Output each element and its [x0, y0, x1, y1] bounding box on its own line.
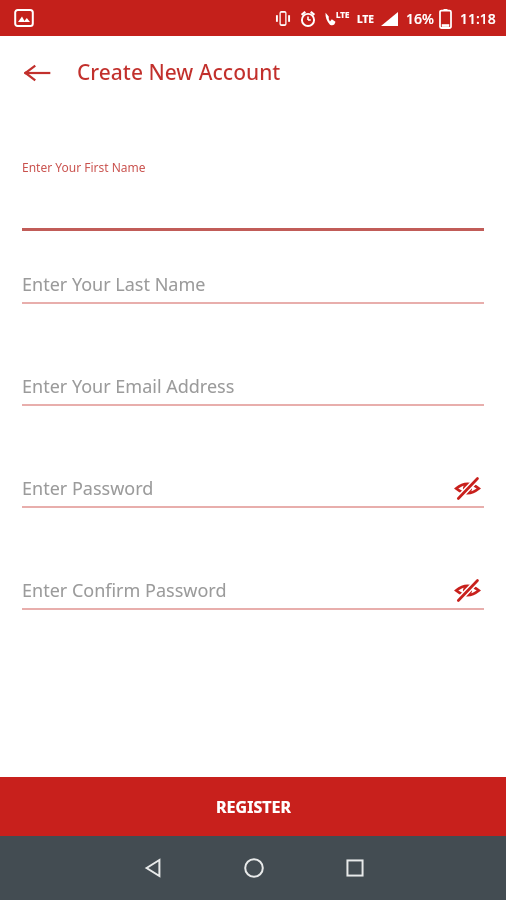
button[interactable]: Home	[203, 836, 304, 900]
button[interactable]: Enter Your Email Address	[22, 374, 484, 406]
staticText: Enter Your First Name	[22, 159, 146, 175]
button[interactable]: REGISTER	[0, 777, 506, 836]
staticText: LTE	[357, 12, 374, 26]
staticText: Enter Your Last Name	[22, 272, 206, 297]
button[interactable]: Enter Your First Name	[22, 159, 484, 231]
button[interactable]: Enter Your Last Name	[22, 272, 484, 304]
button[interactable]: Enter Password	[22, 476, 484, 508]
staticText: Enter Your Email Address	[22, 374, 235, 399]
button[interactable]: Back	[14, 50, 60, 96]
button[interactable]: Toggle password visibility	[450, 574, 484, 606]
staticText: REGISTER	[216, 796, 291, 818]
button[interactable]: Back	[102, 836, 203, 900]
staticText: Create New Account	[77, 58, 281, 87]
button[interactable]: Recent apps	[304, 836, 405, 900]
staticText: 16%	[406, 9, 434, 28]
staticText: Enter Password	[22, 476, 154, 501]
button[interactable]: Toggle password visibility	[450, 472, 484, 504]
staticText: LTE	[336, 9, 350, 20]
staticText: Enter Confirm Password	[22, 578, 227, 603]
staticText: 11:18	[460, 9, 496, 28]
button[interactable]: Enter Confirm Password	[22, 578, 484, 610]
